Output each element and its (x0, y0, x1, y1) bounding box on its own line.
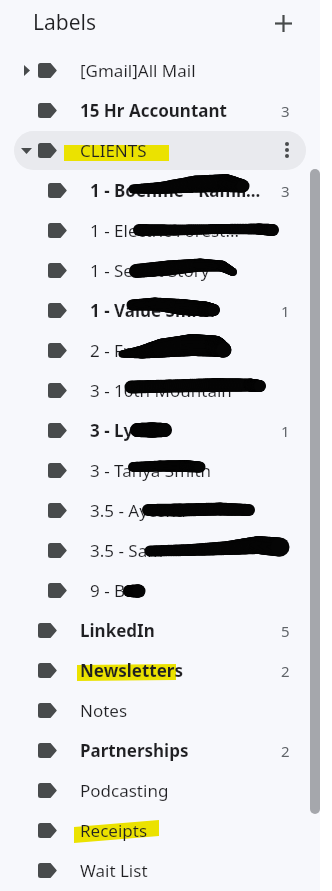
staticText: Wait List (80, 859, 270, 882)
button[interactable]: Notes (0, 690, 332, 730)
button[interactable]: More options (274, 137, 300, 163)
staticText: Labels (33, 8, 97, 37)
button[interactable]: 1 - Secret Story (0, 250, 332, 290)
button[interactable]: 3 - Tanya Smith (0, 450, 332, 490)
staticText: 2 (281, 661, 290, 681)
button[interactable]: Receipts (0, 810, 332, 850)
button[interactable]: [Gmail]All Mail (0, 50, 332, 90)
staticText: 1 - Value Smith (90, 299, 280, 322)
staticText: 5 (281, 621, 290, 641)
staticText: Newsletters (80, 659, 270, 682)
staticText: Podcasting (80, 779, 270, 802)
button[interactable]: 1 - Boehme - Ramir... (0, 170, 332, 210)
staticText: Partnerships (80, 739, 270, 762)
button[interactable]: Podcasting (0, 770, 332, 810)
staticText: CLIENTS (80, 139, 270, 162)
staticText: 9 - Bob (90, 579, 280, 602)
staticText: 3.5 - Ayesha (90, 499, 280, 522)
button[interactable]: 1 - Value Smith (0, 290, 332, 330)
staticText: Receipts (80, 819, 270, 842)
staticText: 3 - Tanya Smith (90, 459, 280, 482)
button[interactable]: Partnerships (0, 730, 332, 770)
button[interactable]: 15 Hr Accountant (0, 90, 332, 130)
staticText: 2 (281, 741, 290, 761)
staticText: 3 (281, 101, 290, 121)
staticText: 3.5 - Sam (90, 539, 280, 562)
button[interactable]: 3 - 10th Mountain (0, 370, 332, 410)
staticText: 3 - 10th Mountain (90, 379, 280, 402)
button[interactable]: 9 - Bob (0, 570, 332, 610)
staticText: 1 - Electric Forest... (90, 219, 280, 242)
staticText: 1 - Secret Story (90, 259, 280, 282)
staticText: 3 (281, 181, 290, 201)
staticText: 3 - Lynn (90, 419, 280, 442)
button[interactable]: 3.5 - Ayesha (0, 490, 332, 530)
button[interactable]: Newsletters (0, 650, 332, 690)
button[interactable]: 1 - Electric Forest... (0, 210, 332, 250)
button[interactable]: 2 - Fred (0, 330, 332, 370)
button[interactable]: Create new label (267, 7, 299, 39)
button[interactable]: 3 - Lynn (0, 410, 332, 450)
staticText: 2 - Fred (90, 339, 280, 362)
staticText: 1 - Boehme - Ramir... (90, 179, 280, 202)
button[interactable]: LinkedIn (0, 610, 332, 650)
button[interactable]: 3.5 - Sam (0, 530, 332, 570)
staticText: 1 (281, 301, 290, 321)
staticText: [Gmail]All Mail (80, 59, 270, 82)
button[interactable]: CLIENTS (0, 130, 332, 170)
button[interactable]: Wait List (0, 850, 332, 890)
staticText: 1 (281, 421, 290, 441)
staticText: Notes (80, 699, 270, 722)
staticText: 15 Hr Accountant (80, 99, 270, 122)
staticText: LinkedIn (80, 619, 270, 642)
